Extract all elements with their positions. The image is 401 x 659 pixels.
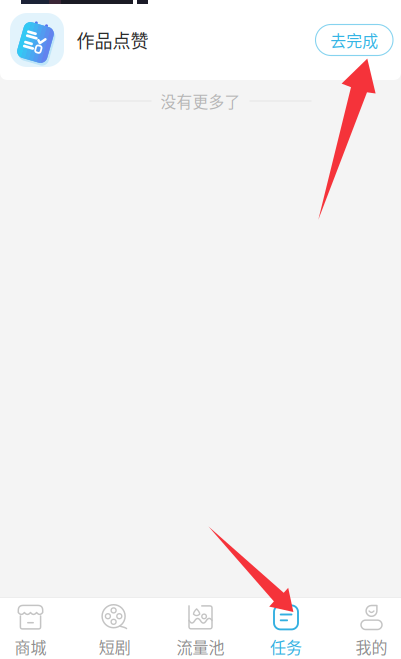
button[interactable]: 去完成 [315,24,393,55]
button[interactable]: 任务 [241,598,321,659]
staticText: 我的 [355,635,387,658]
button[interactable]: 我的 [321,598,401,659]
button[interactable]: 流量池 [160,598,241,659]
staticText: 作品点赞 [76,27,148,53]
staticText: 任务 [270,635,302,658]
staticText: 商城 [14,635,46,658]
staticText: 流量池 [176,635,224,658]
staticText: 短剧 [99,635,131,658]
staticText: 没有更多了 [160,90,240,112]
staticText: 去完成 [330,28,378,51]
button[interactable]: 短剧 [80,598,160,659]
button[interactable]: 商城 [0,598,80,659]
